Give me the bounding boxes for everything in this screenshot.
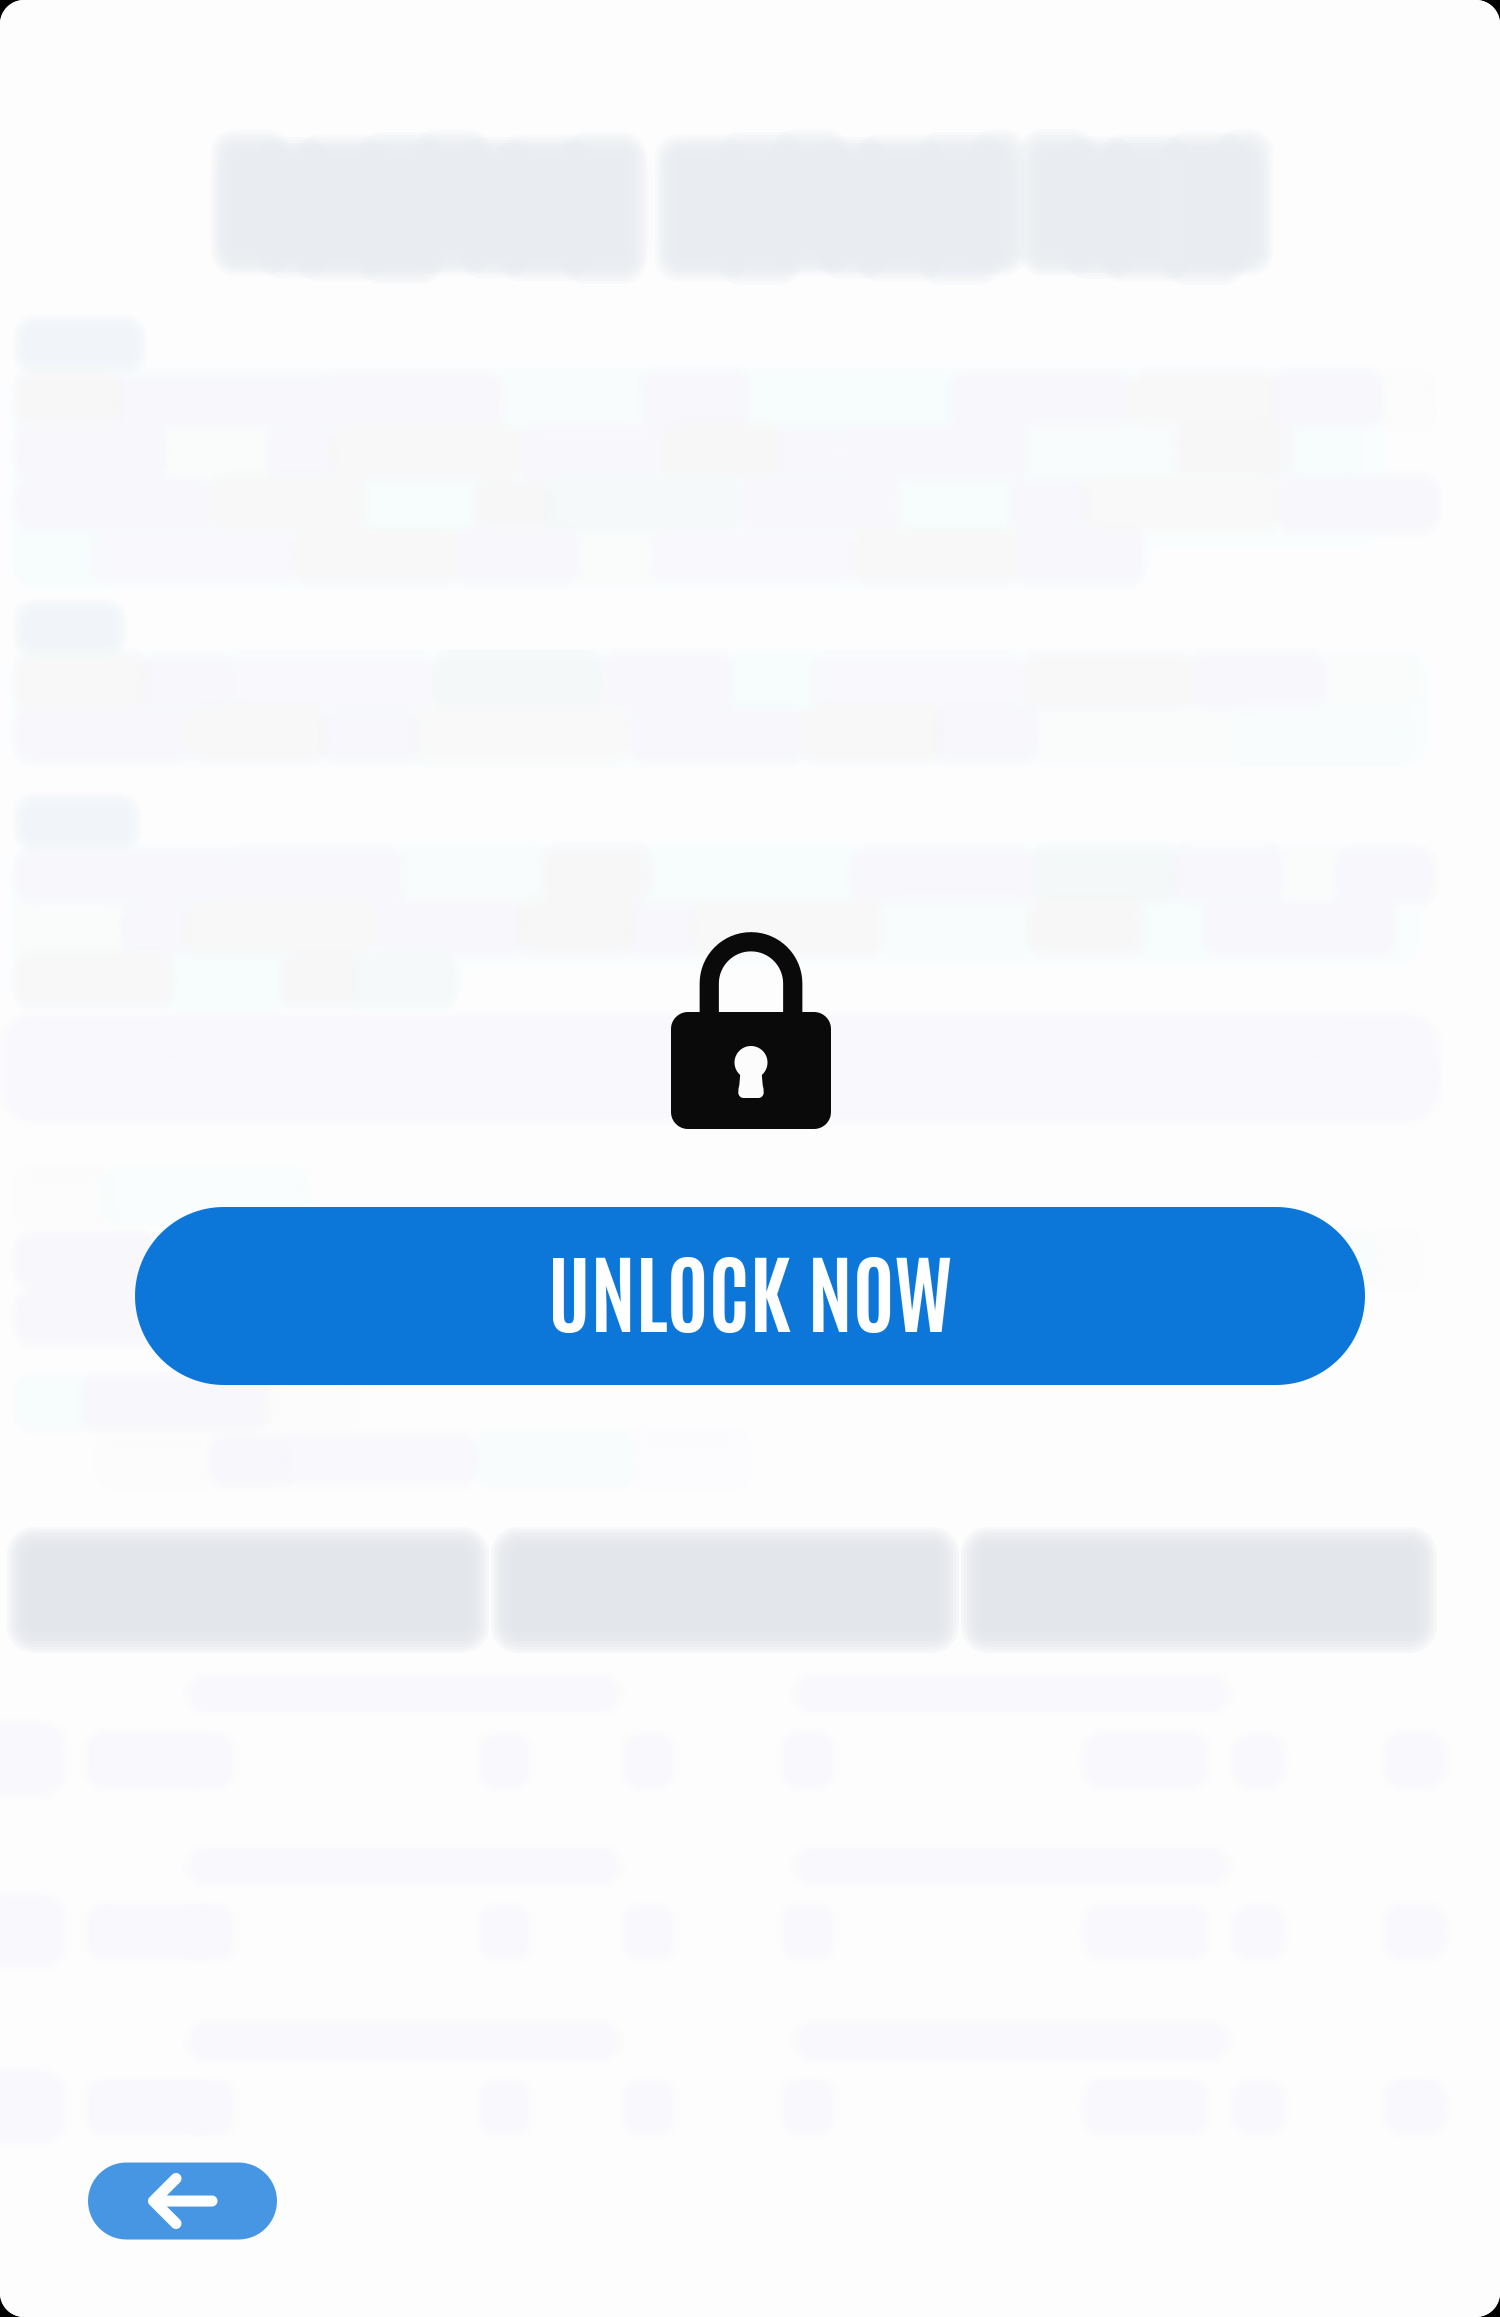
button[interactable]: UNLOCK NOW	[135, 1207, 1365, 1385]
staticText: UNLOCK NOW	[547, 1232, 952, 1344]
button[interactable]: Back	[88, 2162, 277, 2239]
